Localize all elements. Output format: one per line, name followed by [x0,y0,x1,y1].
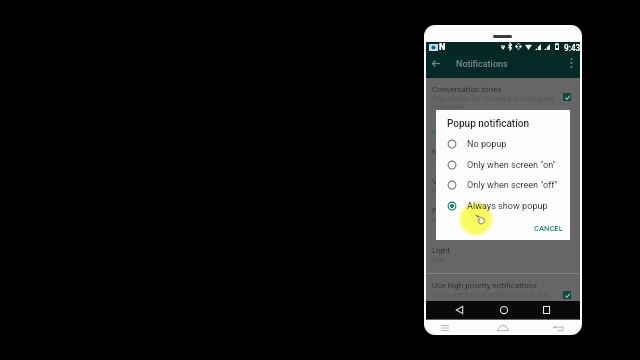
staticText: 9:43 [564,43,581,53]
staticText: N [439,42,446,53]
button[interactable]: Menu [436,320,454,336]
button[interactable]: Light [426,241,556,259]
staticText: CANCEL [534,224,563,233]
staticText: Use high priority notifications [432,280,537,289]
staticText: Blue [432,255,446,263]
button[interactable]: Back [451,301,468,319]
staticText: Play sounds for incoming and outgoing [432,94,555,102]
button[interactable]: Only when screen "on" [441,155,570,175]
staticText: Show previews of notifications at the [432,290,548,298]
button[interactable]: Back [549,320,567,336]
staticText: Popup notification [447,118,529,130]
button[interactable]: Recent apps [538,301,555,319]
staticText: Only when screen "off" [467,180,558,191]
staticText: Always show popup [467,201,548,212]
staticText: Light [432,245,450,254]
button[interactable]: More options [564,55,579,70]
staticText: Always show popup [432,215,495,223]
staticText: Conversation tones [432,84,502,93]
button[interactable]: No popup [441,134,570,154]
button[interactable]: Always show popup [441,196,570,216]
staticText: Default [432,186,455,194]
staticText: No popup [467,139,507,150]
button[interactable]: Home [494,320,512,336]
button[interactable]: Conversation tones [426,80,556,98]
button[interactable]: Popup notification [426,201,556,219]
staticText: messages [432,102,465,110]
staticText: Messages [432,128,467,137]
button[interactable]: CANCEL [530,221,567,236]
staticText: Chime [432,156,453,164]
staticText: Only when screen "on" [467,160,556,171]
button[interactable]: Vibrate [426,172,556,190]
staticText: Vibrate [432,176,458,185]
button[interactable]: Back [428,55,444,71]
button[interactable]: Only when screen "off" [441,175,570,195]
staticText: Popup notification [432,205,498,214]
staticText: Notification tone [432,146,492,155]
button[interactable]: Home [495,301,512,319]
button[interactable]: Use high priority notifications [426,276,556,294]
staticText: Notifications [456,59,508,70]
button[interactable]: Notification tone [426,142,556,160]
